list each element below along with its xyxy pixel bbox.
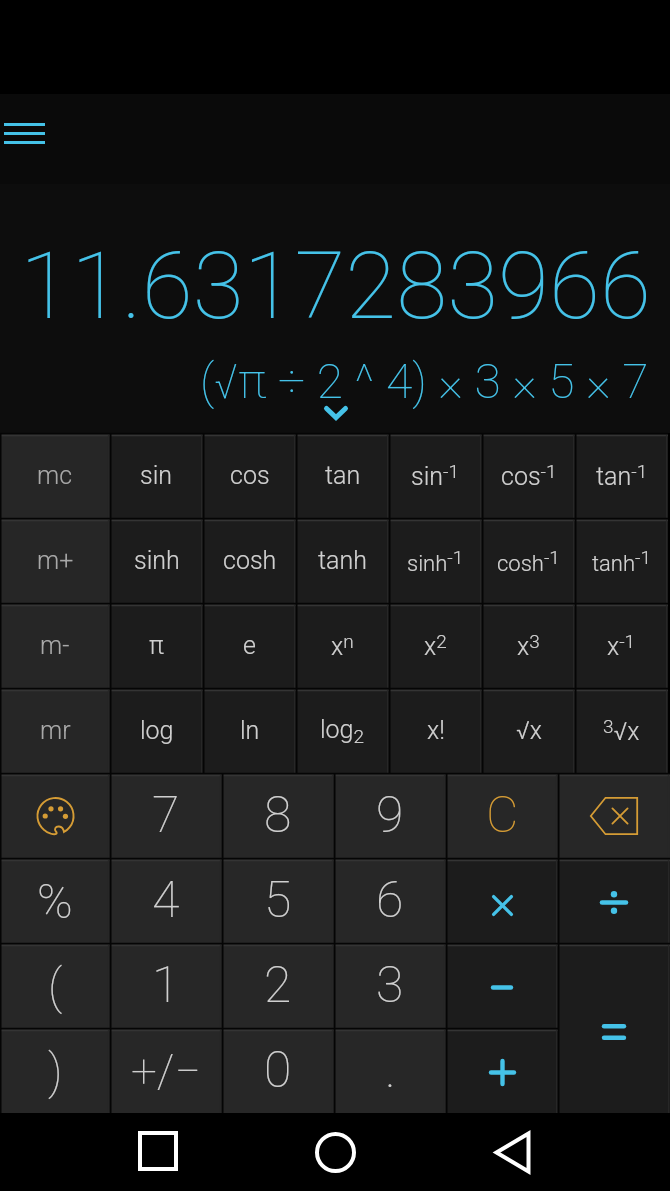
staticText: tanh-1 (592, 546, 652, 576)
button[interactable]: 7 (110, 773, 222, 858)
button[interactable]: m+ (0, 518, 110, 603)
button[interactable]: sinh-1 (389, 518, 482, 603)
staticText: sinh-1 (407, 546, 464, 576)
staticText: 9 (376, 786, 404, 845)
button[interactable]: Home (295, 1113, 375, 1191)
button[interactable]: √x (482, 688, 575, 773)
button[interactable]: 1 (110, 943, 222, 1028)
button[interactable]: ln (203, 688, 296, 773)
staticText: +/− (131, 1044, 201, 1098)
button[interactable]: cosh (203, 518, 296, 603)
button[interactable]: 3√x (575, 688, 668, 773)
staticText: 4 (152, 871, 180, 930)
button[interactable]: Minus (446, 943, 558, 1028)
button[interactable]: x! (389, 688, 482, 773)
staticText: sin-1 (411, 460, 460, 491)
staticText: tanh (318, 546, 367, 575)
button[interactable]: 3 (334, 943, 446, 1028)
staticText: log (140, 716, 174, 745)
button[interactable]: sinh (110, 518, 203, 603)
staticText: . (385, 1041, 396, 1100)
staticText: cos-1 (501, 460, 557, 491)
staticText: ) (48, 1043, 63, 1099)
staticText: 3√x (603, 715, 640, 746)
staticText: mc (37, 461, 73, 490)
button[interactable]: +/− (110, 1028, 222, 1113)
staticText: cosh-1 (497, 546, 560, 576)
staticText: m- (40, 631, 70, 660)
staticText: 0 (264, 1041, 292, 1100)
button[interactable]: 5 (222, 858, 334, 943)
staticText: (√π ÷ 2 ^ 4) × 3 × 5 × 7 (200, 353, 649, 409)
staticText: 8 (264, 786, 292, 845)
staticText: 6 (376, 871, 404, 930)
button[interactable]: Recents (118, 1113, 198, 1191)
button[interactable]: π (110, 603, 203, 688)
button[interactable]: ( (0, 943, 110, 1028)
button[interactable]: cos (203, 433, 296, 518)
button[interactable]: 4 (110, 858, 222, 943)
button[interactable]: mr (0, 688, 110, 773)
button[interactable]: Multiply (446, 858, 558, 943)
staticText: √x (516, 716, 542, 745)
staticText: sin (140, 461, 173, 490)
staticText: cosh (223, 546, 277, 575)
button[interactable]: cos-1 (482, 433, 575, 518)
button[interactable]: mc (0, 433, 110, 518)
staticText: cos (230, 461, 270, 490)
button[interactable]: Divide (558, 858, 670, 943)
staticText: m+ (37, 546, 74, 575)
button[interactable]: 0 (222, 1028, 334, 1113)
button[interactable]: 8 (222, 773, 334, 858)
button[interactable]: Menu (0, 94, 56, 168)
button[interactable]: Theme (0, 773, 110, 858)
button[interactable]: tanh-1 (575, 518, 668, 603)
button[interactable]: tan-1 (575, 433, 668, 518)
button[interactable]: x-1 (575, 603, 668, 688)
button[interactable]: sin-1 (389, 433, 482, 518)
button[interactable]: x2 (389, 603, 482, 688)
staticText: tan (325, 461, 361, 490)
staticText: 1 (152, 956, 180, 1015)
staticText: x-1 (607, 630, 636, 661)
button[interactable]: m- (0, 603, 110, 688)
button[interactable]: log2 (296, 688, 389, 773)
staticText: log2 (320, 715, 365, 747)
button[interactable]: Back (472, 1113, 552, 1191)
button[interactable]: 6 (334, 858, 446, 943)
staticText: x! (427, 716, 445, 745)
staticText: x2 (424, 630, 447, 661)
staticText: x3 (517, 630, 540, 661)
button[interactable]: Equals (558, 943, 670, 1113)
button[interactable]: e (203, 603, 296, 688)
button[interactable]: 9 (334, 773, 446, 858)
button[interactable]: sin (110, 433, 203, 518)
button[interactable]: xn (296, 603, 389, 688)
staticText: 2 (264, 956, 292, 1015)
staticText: C (486, 786, 519, 845)
button[interactable]: C (446, 773, 558, 858)
staticText: ln (240, 716, 260, 745)
button[interactable]: . (334, 1028, 446, 1113)
staticText: π (149, 631, 164, 660)
staticText: 3 (376, 956, 404, 1015)
staticText: 5 (264, 871, 292, 930)
staticText: 11.6317283966 (20, 232, 651, 341)
staticText: sinh (134, 546, 180, 575)
staticText: ( (48, 958, 63, 1014)
button[interactable]: Backspace (558, 773, 670, 858)
button[interactable]: Plus (446, 1028, 558, 1113)
button[interactable]: % (0, 858, 110, 943)
button[interactable]: 2 (222, 943, 334, 1028)
button[interactable]: tanh (296, 518, 389, 603)
button[interactable]: ) (0, 1028, 110, 1113)
staticText: 7 (152, 786, 180, 845)
staticText: mr (40, 716, 71, 745)
staticText: e (243, 631, 256, 660)
staticText: tan-1 (596, 460, 648, 491)
staticText: xn (331, 630, 354, 661)
button[interactable]: tan (296, 433, 389, 518)
button[interactable]: cosh-1 (482, 518, 575, 603)
button[interactable]: x3 (482, 603, 575, 688)
button[interactable]: log (110, 688, 203, 773)
